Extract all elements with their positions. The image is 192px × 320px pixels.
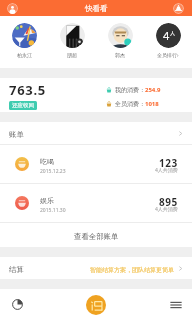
button[interactable]: Menu bbox=[160, 289, 192, 320]
staticText: 人 bbox=[170, 30, 175, 36]
button[interactable]: 账单 bbox=[0, 122, 192, 144]
staticText: 4 bbox=[163, 28, 170, 43]
staticText: 朋超 bbox=[67, 52, 77, 58]
button[interactable]: 郭杰 bbox=[96, 16, 144, 68]
staticText: 还应收回 bbox=[12, 102, 34, 109]
staticText: 2015.11.30 bbox=[40, 207, 66, 214]
button[interactable]: 结算 bbox=[0, 257, 192, 279]
button[interactable]: 吃喝 bbox=[0, 145, 192, 183]
staticText: 1018 bbox=[145, 100, 159, 108]
staticText: 娱乐 bbox=[40, 196, 54, 205]
button[interactable]: 柏永江 bbox=[0, 16, 48, 68]
staticText: 账单 bbox=[9, 130, 24, 139]
button[interactable]: 4 bbox=[144, 16, 192, 68]
staticText: 全员排行› bbox=[157, 52, 179, 59]
staticText: 123 bbox=[159, 156, 178, 170]
button[interactable]: 朋超 bbox=[48, 16, 96, 68]
staticText: 智能结算方案，团队结算更简单 bbox=[90, 266, 174, 274]
button[interactable]: Profile bbox=[7, 3, 18, 14]
staticText: 4人共消费 bbox=[155, 167, 178, 174]
staticText: 全员消费： bbox=[115, 100, 145, 108]
staticText: 4人共消费 bbox=[155, 206, 178, 213]
staticText: 763.5 bbox=[9, 81, 46, 99]
staticText: 郭杰 bbox=[115, 52, 125, 58]
staticText: 254.9 bbox=[145, 86, 161, 94]
staticText: 查看全部账单 bbox=[74, 232, 119, 241]
staticText: 895 bbox=[159, 195, 178, 209]
button[interactable]: Notifications bbox=[173, 3, 184, 14]
staticText: 吃喝 bbox=[40, 157, 54, 166]
button[interactable]: 763.5 bbox=[0, 78, 192, 112]
button[interactable]: Add record bbox=[86, 295, 106, 315]
staticText: 快看看 bbox=[85, 4, 108, 13]
staticText: 结算 bbox=[9, 265, 24, 274]
staticText: 2015.12.23 bbox=[40, 168, 66, 175]
staticText: 我的消费： bbox=[115, 86, 145, 94]
button[interactable]: 查看全部账单 bbox=[0, 223, 192, 247]
button[interactable]: Statistics bbox=[0, 289, 34, 320]
button[interactable]: 娱乐 bbox=[0, 184, 192, 222]
staticText: 柏永江 bbox=[17, 52, 32, 58]
